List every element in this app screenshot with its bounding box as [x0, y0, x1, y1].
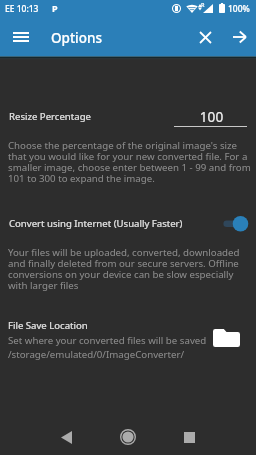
staticText: 100: [175, 107, 248, 126]
staticText: Resize Percentage: [9, 110, 91, 123]
staticText: R: [201, 1, 205, 8]
button[interactable]: Next: [221, 19, 256, 55]
staticText: File Save Location: [8, 319, 88, 332]
button[interactable]: File Save Location: [0, 316, 256, 360]
button[interactable]: Convert using Internet (Usually Faster): [0, 210, 256, 236]
staticText: Choose the percentage of the original im…: [8, 139, 254, 185]
button[interactable]: Open navigation menu: [2, 17, 38, 53]
staticText: Your files will be uploaded, converted, …: [8, 246, 254, 292]
staticText: EE 10:13: [5, 3, 39, 15]
staticText: Convert using Internet (Usually Faster): [9, 217, 183, 230]
staticText: /storage/emulated/0/ImageConverter/: [8, 348, 185, 361]
button[interactable]: Resize Percentage: [0, 100, 256, 130]
button[interactable]: Home: [110, 419, 146, 455]
staticText: 100%: [228, 3, 250, 15]
staticText: P: [52, 2, 58, 14]
button[interactable]: Recent apps: [171, 419, 207, 455]
staticText: Options: [51, 29, 103, 47]
button[interactable]: Back: [48, 419, 84, 455]
button[interactable]: Close: [187, 19, 223, 55]
staticText: Set where your converted files will be s…: [8, 334, 207, 347]
